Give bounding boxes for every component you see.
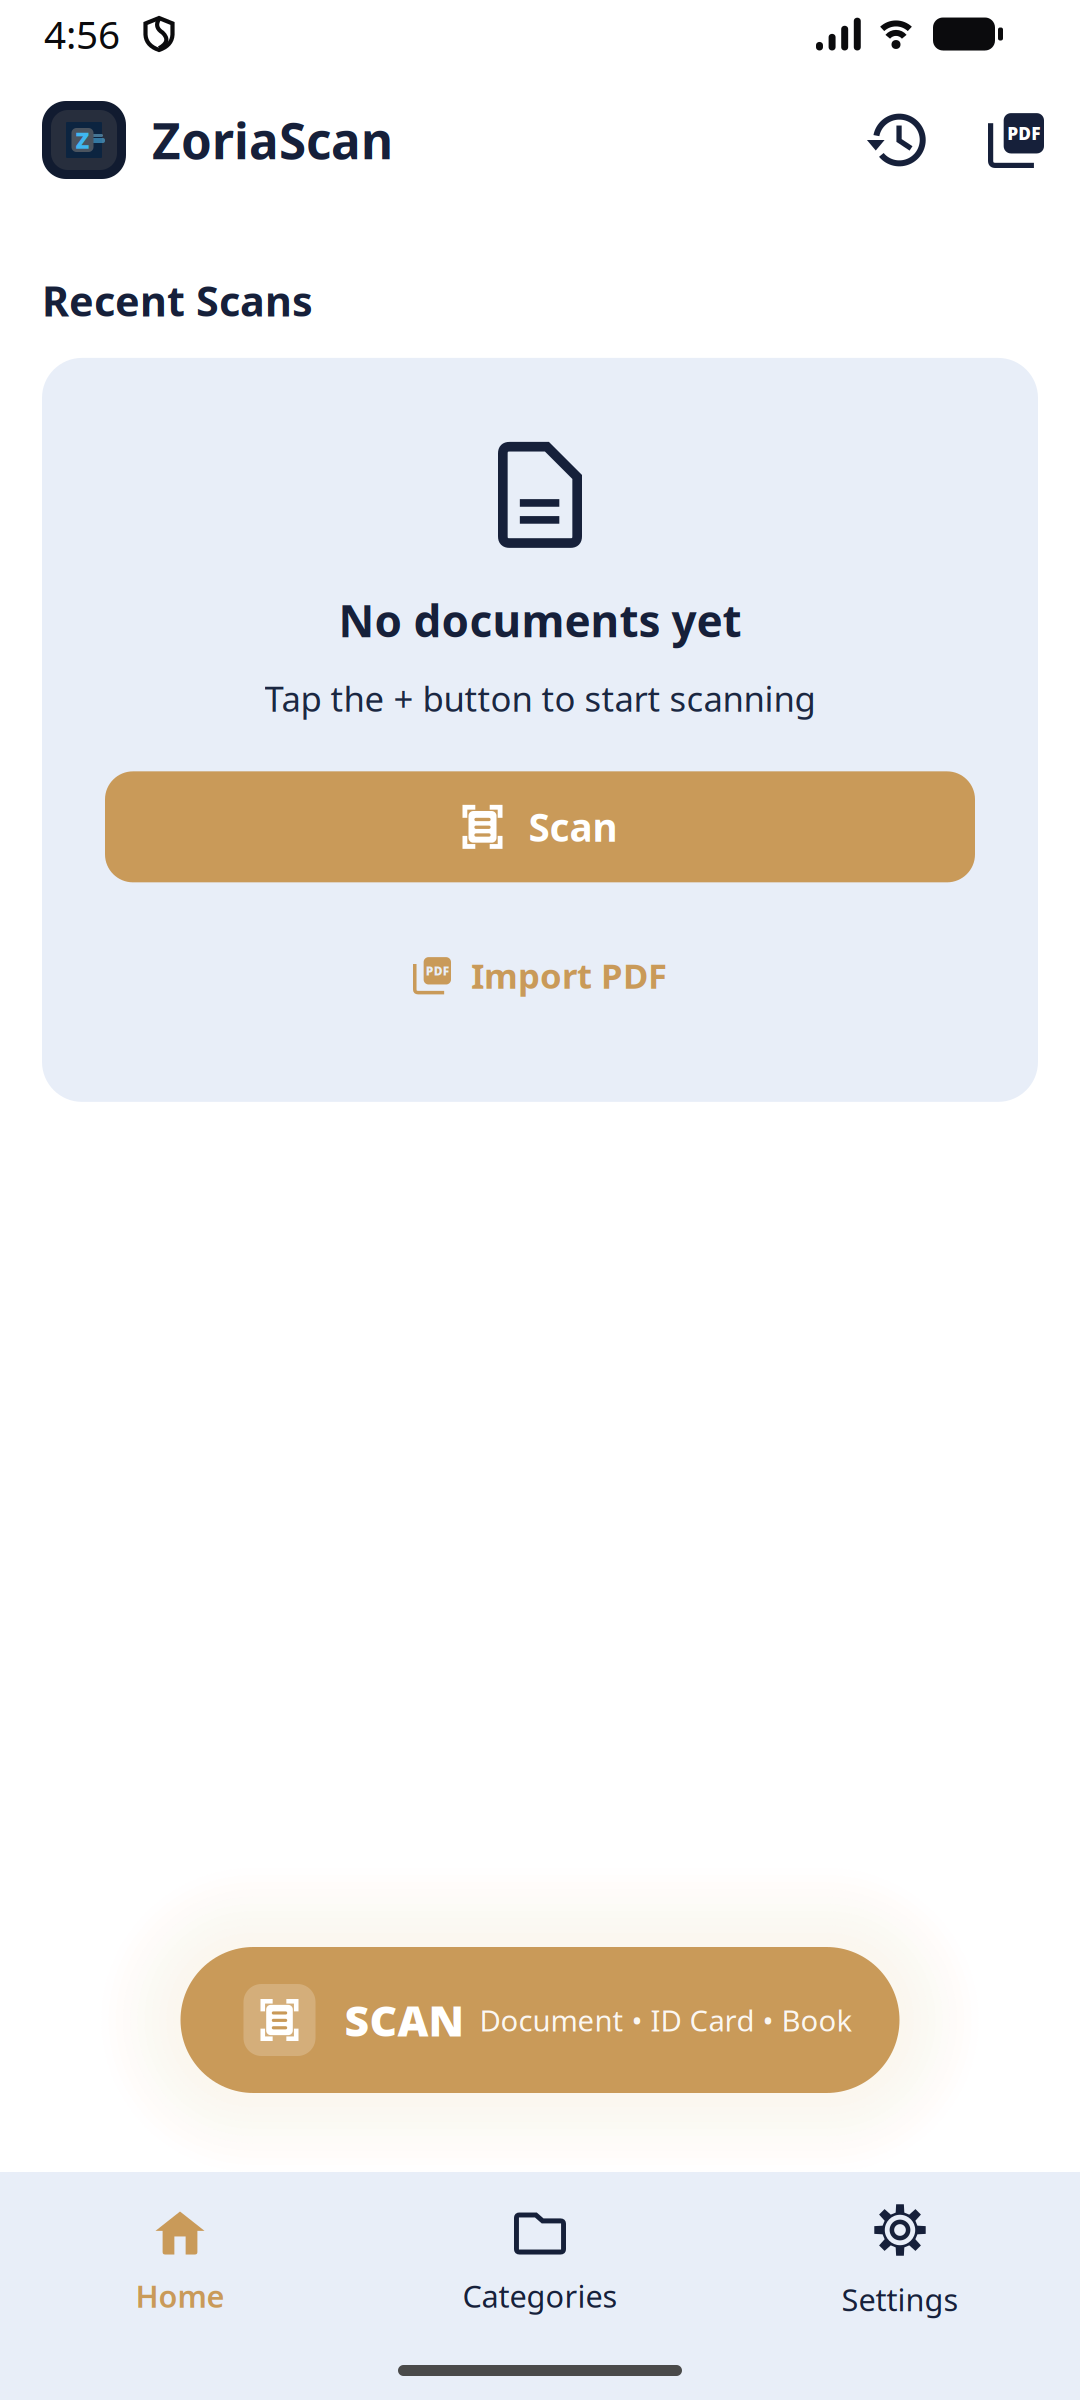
button[interactable]: Home <box>0 2203 360 2324</box>
button[interactable]: Scan <box>105 771 975 882</box>
staticText: Recent Scans <box>42 273 313 328</box>
staticText: No documents yet <box>338 591 741 649</box>
button[interactable]: PDF <box>387 940 693 1010</box>
staticText: Document • ID Card • Book <box>479 2000 852 2039</box>
staticText: PDF <box>426 963 449 979</box>
staticText: SCAN <box>344 1992 464 2048</box>
staticText: Scan <box>528 801 617 852</box>
button[interactable]: History <box>852 97 941 182</box>
staticText: Categories <box>462 2275 617 2316</box>
button[interactable]: SCAN <box>180 1947 899 2093</box>
staticText: Z <box>75 125 89 155</box>
button[interactable]: PDF tools <box>972 98 1060 182</box>
staticText: Settings <box>841 2279 958 2320</box>
staticText: 4:56 <box>44 8 120 60</box>
staticText: ZoriaScan <box>152 107 393 173</box>
staticText: Import PDF <box>471 952 667 998</box>
staticText: Home <box>135 2275 224 2316</box>
button[interactable]: Categories <box>360 2203 720 2324</box>
button[interactable]: Settings <box>720 2200 1080 2328</box>
staticText: Tap the + button to start scanning <box>264 675 815 721</box>
staticText: PDF <box>1007 122 1040 145</box>
